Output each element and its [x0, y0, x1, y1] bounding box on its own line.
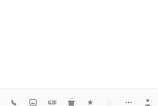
button[interactable]: FaceTime — [4, 99, 23, 106]
button[interactable]: Memoji — [138, 99, 157, 106]
staticText: GIF — [48, 99, 57, 106]
button[interactable]: Apple Cash — [62, 99, 81, 106]
button[interactable]: More — [119, 99, 138, 106]
button[interactable]: Images — [43, 99, 62, 106]
button[interactable]: Photos — [23, 99, 43, 106]
button[interactable]: App Store — [81, 99, 100, 106]
